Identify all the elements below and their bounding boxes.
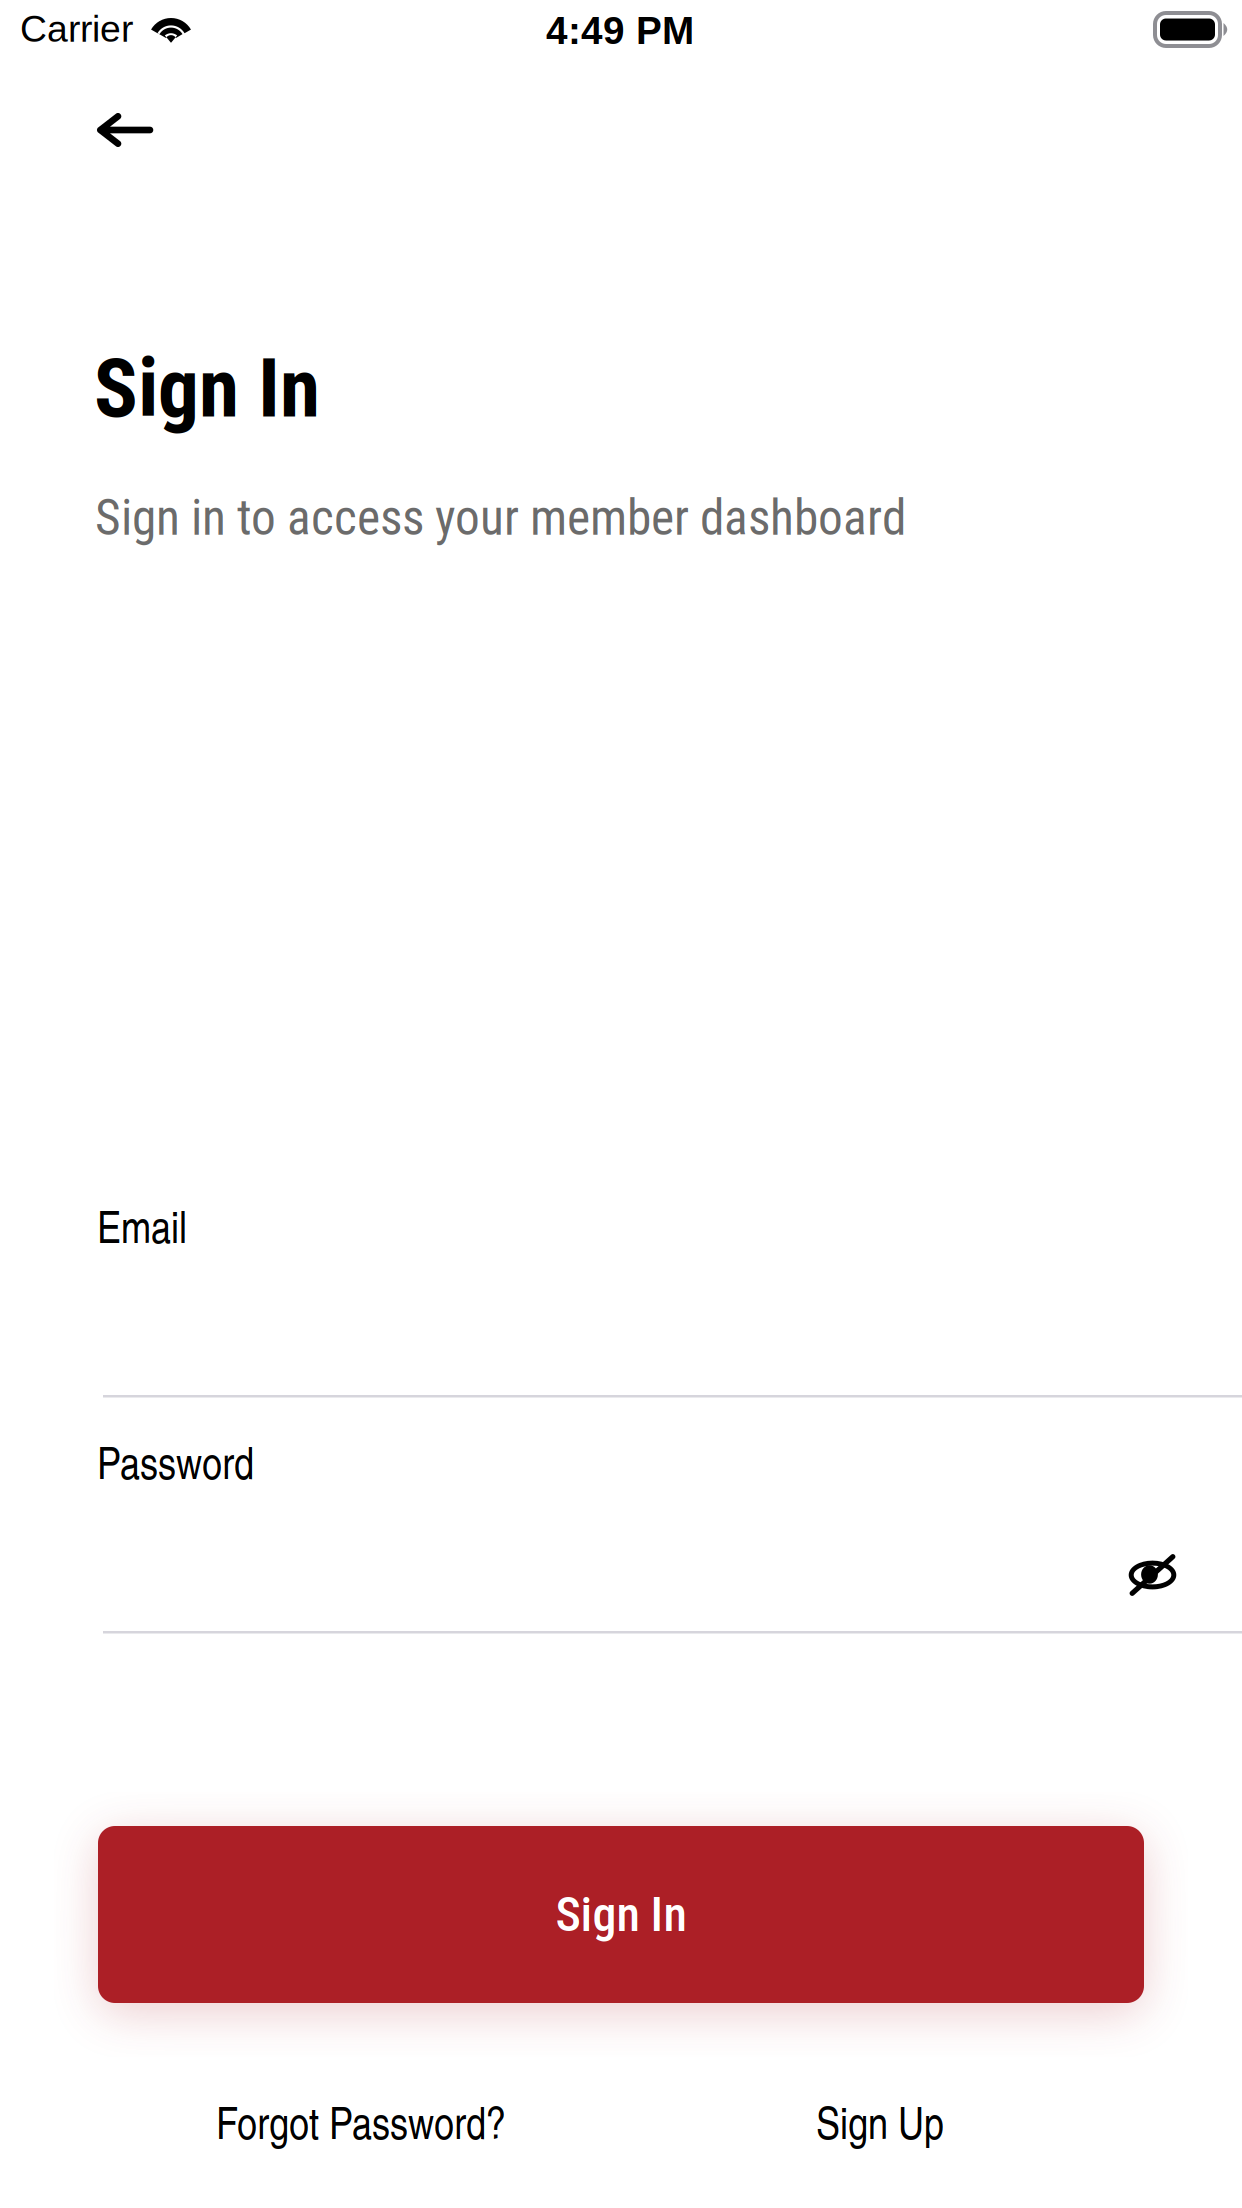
staticText: Password bbox=[97, 1431, 254, 1491]
button[interactable]: Sign Up bbox=[816, 2091, 944, 2151]
button[interactable]: Show password bbox=[1080, 1514, 1225, 1636]
staticText: Sign In bbox=[94, 341, 320, 436]
staticText: 4:49 PM bbox=[546, 9, 694, 52]
staticText: Email bbox=[97, 1195, 187, 1255]
button[interactable]: Forgot Password? bbox=[216, 2091, 506, 2151]
staticText: Sign Up bbox=[816, 2091, 944, 2151]
button[interactable]: Back bbox=[40, 74, 210, 186]
button[interactable]: Sign In bbox=[98, 1826, 1144, 2003]
staticText: Forgot Password? bbox=[216, 2091, 506, 2151]
staticText: Sign In bbox=[555, 1886, 686, 1943]
staticText: Sign in to access your member dashboard bbox=[95, 489, 906, 547]
staticText: Carrier bbox=[20, 8, 133, 50]
